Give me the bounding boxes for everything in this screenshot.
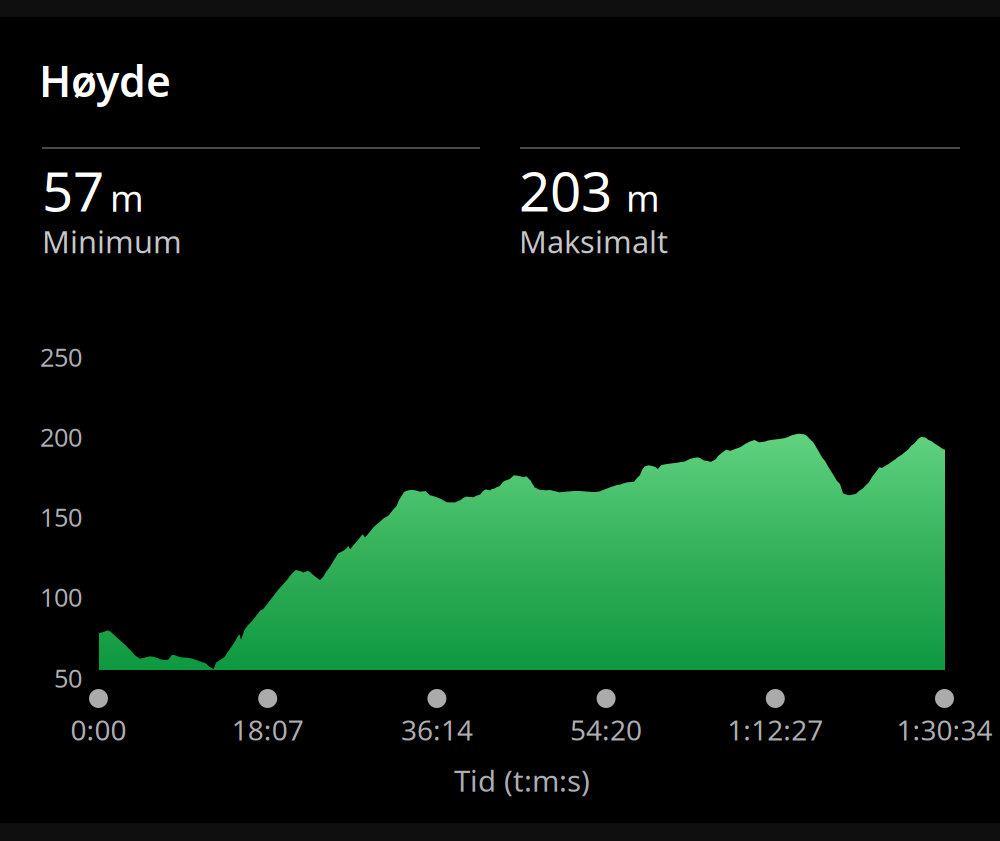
staticText: Minimum bbox=[42, 221, 182, 262]
staticText: Høyde bbox=[39, 52, 171, 109]
staticText: 54:20 bbox=[570, 711, 642, 748]
staticText: Maksimalt bbox=[519, 221, 668, 262]
button[interactable]: Høyde bbox=[0, 17, 1000, 823]
staticText: 57 bbox=[42, 154, 104, 227]
staticText: 50 bbox=[54, 661, 82, 695]
staticText: m bbox=[626, 174, 660, 222]
staticText: 1:12:27 bbox=[727, 711, 823, 748]
staticText: 1:30:34 bbox=[896, 711, 992, 748]
staticText: 200 bbox=[40, 420, 82, 454]
staticText: 18:07 bbox=[232, 711, 304, 748]
staticText: m bbox=[110, 174, 144, 222]
staticText: 150 bbox=[40, 500, 82, 534]
staticText: 250 bbox=[40, 340, 82, 374]
staticText: 36:14 bbox=[401, 711, 473, 748]
staticText: Tid (t:m:s) bbox=[454, 761, 590, 800]
staticText: 100 bbox=[40, 580, 82, 614]
staticText: 203 bbox=[519, 154, 612, 227]
staticText: 0:00 bbox=[70, 711, 126, 748]
